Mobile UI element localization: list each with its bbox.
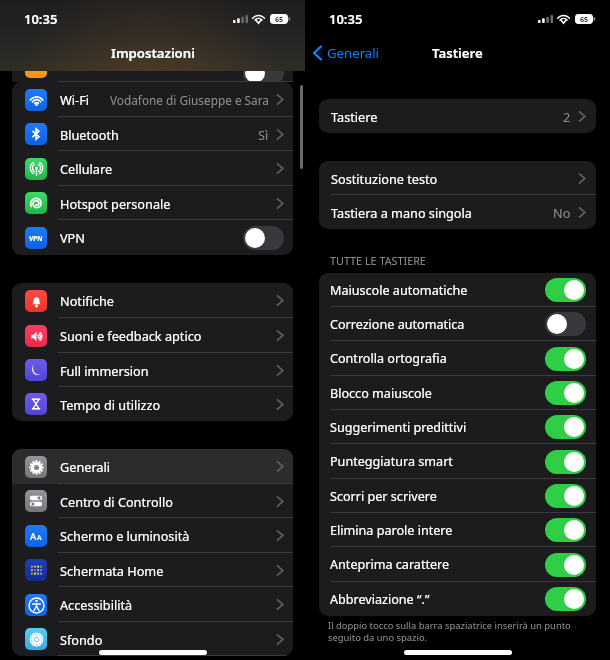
button[interactable]: A (12, 518, 293, 553)
button[interactable] (545, 312, 586, 336)
staticText: Accessibilità (60, 596, 133, 613)
staticText: Maiuscole automatiche (330, 282, 468, 299)
staticText: Scorri per scrivere (330, 488, 437, 505)
button[interactable]: Punteggiatura smart (319, 444, 596, 479)
button[interactable]: Accessibilità (12, 587, 293, 622)
staticText: Abbreviazione “.” (330, 591, 430, 608)
button[interactable] (545, 450, 586, 474)
staticText: 10:35 (329, 10, 363, 28)
staticText: Notifiche (60, 292, 114, 309)
staticText: 65 (275, 14, 284, 24)
staticText: Tastiera a mano singola (331, 204, 472, 221)
staticText: Generali (60, 458, 111, 475)
staticText: Correzione automatica (330, 316, 465, 333)
staticText: VPN (60, 229, 85, 246)
button[interactable]: Abbreviazione “.” (319, 582, 596, 616)
button[interactable] (243, 226, 284, 250)
staticText: Suggerimenti predittivi (330, 419, 467, 436)
staticText: Elimina parole intere (330, 522, 453, 539)
button[interactable] (545, 587, 586, 611)
button[interactable]: Hotspot personale (12, 186, 293, 220)
staticText: Sfondo (60, 631, 103, 648)
staticText: Controlla ortografia (330, 350, 447, 367)
staticText: Bluetooth (60, 126, 119, 143)
staticText: A (30, 530, 37, 543)
staticText: Hotspot personale (60, 195, 171, 212)
button[interactable]: Controlla ortografia (319, 341, 596, 376)
staticText: No (553, 204, 571, 221)
button[interactable]: Tastiere (319, 99, 596, 133)
staticText: Tastiere (432, 44, 483, 62)
button[interactable]: Sostituzione testo (319, 161, 596, 195)
button[interactable]: Scorri per scrivere (319, 479, 596, 513)
staticText: Full immersion (60, 362, 149, 379)
staticText: Punteggiatura smart (330, 453, 453, 470)
button[interactable]: Back to Generali (310, 40, 383, 66)
staticText: Generali (327, 44, 380, 62)
button[interactable]: VPN (12, 220, 293, 255)
button[interactable]: Blocco maiuscole (319, 376, 596, 410)
button[interactable] (243, 61, 284, 85)
button[interactable]: Schermata Home (12, 553, 293, 587)
staticText: Sì (258, 126, 269, 143)
staticText: Vodafone di Giuseppe e Sara (110, 92, 269, 108)
staticText: Tastiere (331, 108, 378, 125)
staticText: VPN (29, 234, 43, 243)
button[interactable] (545, 553, 586, 577)
button[interactable]: Centro di Controllo (12, 484, 293, 518)
button[interactable]: Correzione automatica (319, 307, 596, 341)
staticText: Il doppio tocco sulla barra spaziatrice … (328, 619, 592, 644)
staticText: Cellulare (60, 160, 113, 177)
staticText: TUTTE LE TASTIERE (330, 253, 426, 268)
staticText: 2 (563, 108, 571, 125)
button[interactable]: Suoni e feedback aptico (12, 318, 293, 353)
staticText: Schermo e luminosità (60, 527, 190, 544)
staticText: Suoni e feedback aptico (60, 327, 202, 344)
button[interactable] (545, 347, 586, 371)
button[interactable] (12, 56, 293, 82)
button[interactable]: Tastiera a mano singola (319, 195, 596, 229)
button[interactable]: Notifiche (12, 283, 293, 318)
button[interactable]: Wi-Fi (12, 82, 293, 117)
button[interactable]: Cellulare (12, 151, 293, 186)
staticText: A (37, 533, 42, 543)
button[interactable] (545, 415, 586, 439)
button[interactable] (545, 381, 586, 405)
staticText: Sostituzione testo (331, 170, 438, 187)
button[interactable]: Elimina parole intere (319, 513, 596, 547)
button[interactable] (545, 278, 586, 302)
staticText: Impostazioni (111, 44, 195, 62)
button[interactable] (545, 518, 586, 542)
button[interactable]: Bluetooth (12, 117, 293, 151)
button[interactable]: Sfondo (12, 622, 293, 656)
button[interactable]: Generali (12, 449, 293, 484)
button[interactable] (545, 484, 586, 508)
staticText: Centro di Controllo (60, 493, 173, 510)
button[interactable]: Anteprima carattere (319, 547, 596, 582)
button[interactable]: Maiuscole automatiche (319, 273, 596, 307)
staticText: Blocco maiuscole (330, 385, 432, 402)
staticText: 10:35 (24, 10, 58, 28)
staticText: Wi-Fi (60, 91, 90, 108)
staticText: Schermata Home (60, 562, 164, 579)
staticText: 65 (580, 14, 589, 24)
staticText: Anteprima carattere (330, 556, 450, 573)
staticText: Tempo di utilizzo (60, 396, 161, 413)
button[interactable]: Full immersion (12, 353, 293, 387)
button[interactable]: Tempo di utilizzo (12, 387, 293, 421)
button[interactable]: Suggerimenti predittivi (319, 410, 596, 444)
